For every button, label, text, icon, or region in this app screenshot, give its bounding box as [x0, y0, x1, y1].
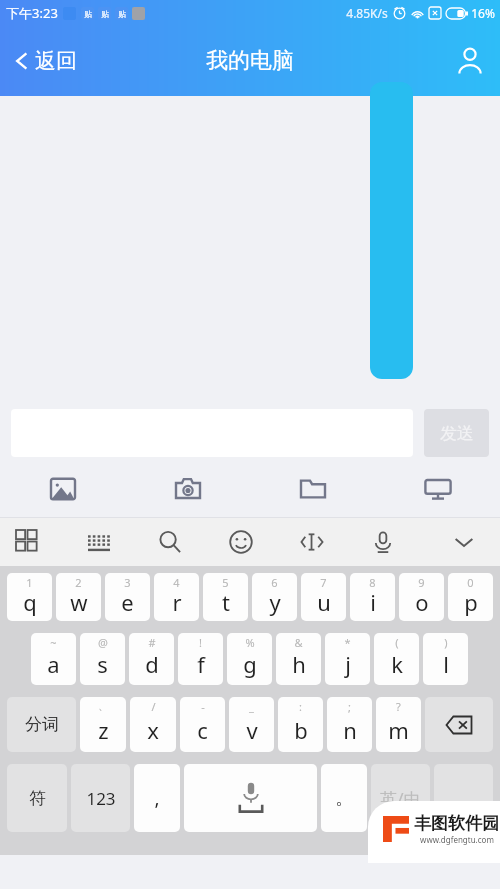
button[interactable]: 分词 [7, 697, 76, 752]
button[interactable]: Computer [375, 461, 500, 517]
button[interactable]: _ [229, 697, 274, 752]
button[interactable]: 6 [252, 573, 297, 621]
staticText: g [243, 649, 257, 679]
staticText: * [344, 635, 351, 650]
button[interactable]: 5 [203, 573, 248, 621]
staticText: 8 [369, 575, 376, 590]
button[interactable]: % [227, 633, 272, 685]
button[interactable]: ? [376, 697, 421, 752]
button[interactable]: : [278, 697, 323, 752]
staticText: 发送 [440, 423, 474, 444]
staticText: p [464, 587, 478, 617]
staticText: 7 [320, 575, 327, 590]
staticText: t [222, 587, 230, 617]
staticText: 英/中 [380, 787, 421, 810]
staticText: ~ [50, 635, 57, 650]
button[interactable]: Gallery [0, 461, 125, 517]
staticText: x [147, 715, 159, 745]
staticText: b [294, 715, 308, 745]
staticText: 丰图软件园 [414, 813, 499, 834]
button[interactable]: Hide keyboard [442, 518, 486, 566]
button[interactable]: 。 [321, 764, 367, 832]
staticText: u [317, 587, 331, 617]
button[interactable]: 7 [301, 573, 346, 621]
staticText: q [23, 587, 37, 617]
button[interactable]: 9 [399, 573, 444, 621]
button[interactable]: 2 [56, 573, 101, 621]
staticText: ! [199, 635, 202, 650]
button[interactable]: ~ [31, 633, 76, 685]
button[interactable]: 1 [7, 573, 52, 621]
button[interactable]: 123 [71, 764, 130, 832]
button[interactable]: Edit [300, 518, 371, 566]
button[interactable]: , [134, 764, 180, 832]
button[interactable]: Files [250, 461, 375, 517]
button[interactable]: Voice [371, 518, 442, 566]
staticText: h [292, 649, 306, 679]
button[interactable]: @ [80, 633, 125, 685]
button[interactable]: / [130, 697, 176, 752]
button[interactable]: 、 [80, 697, 126, 752]
staticText: - [201, 699, 205, 714]
staticText: 4 [173, 575, 180, 590]
button[interactable]: 符 [7, 764, 67, 832]
button[interactable]: Emoji [229, 518, 300, 566]
staticText: 1 [26, 575, 33, 590]
staticText: 123 [86, 787, 116, 810]
staticText: 5 [222, 575, 229, 590]
button[interactable]: - [180, 697, 225, 752]
button[interactable]: * [325, 633, 370, 685]
button[interactable]: # [129, 633, 174, 685]
staticText: 下午3:23 [6, 4, 58, 22]
button[interactable] [370, 82, 413, 379]
button[interactable]: 返回 [6, 42, 83, 80]
button[interactable]: & [276, 633, 321, 685]
button[interactable]: 0 [448, 573, 493, 621]
staticText: ) [444, 635, 448, 650]
staticText: ( [395, 635, 399, 650]
staticText: : [299, 699, 302, 714]
button[interactable]: ) [423, 633, 468, 685]
staticText: r [172, 587, 182, 617]
staticText: ? [396, 699, 401, 714]
staticText: www.dgfengtu.com [420, 834, 494, 845]
staticText: m [388, 715, 409, 745]
button[interactable]: Backspace [425, 697, 493, 752]
button[interactable]: 发送 [424, 409, 489, 457]
staticText: ; [348, 699, 351, 714]
staticText: @ [98, 635, 108, 650]
staticText: v [246, 715, 258, 745]
staticText: 3 [124, 575, 131, 590]
staticText: y [269, 587, 281, 617]
staticText: 2 [75, 575, 82, 590]
staticText: 返回 [35, 48, 77, 74]
staticText: 、 [98, 699, 109, 713]
button[interactable]: Camera [125, 461, 250, 517]
button[interactable]: 4 [154, 573, 199, 621]
staticText: 。 [335, 786, 354, 810]
button[interactable] [434, 764, 493, 832]
button[interactable]: 英/中 [371, 764, 430, 832]
button[interactable]: 3 [105, 573, 150, 621]
button[interactable]: 8 [350, 573, 395, 621]
staticText: e [121, 587, 134, 617]
staticText: 9 [418, 575, 425, 590]
staticText: k [391, 649, 403, 679]
button[interactable]: Space [184, 764, 317, 832]
staticText: 16% [471, 5, 495, 21]
staticText: 贴 [118, 9, 126, 19]
staticText: c [197, 715, 208, 745]
button[interactable]: ( [374, 633, 419, 685]
staticText: i [370, 587, 376, 617]
button[interactable]: Keyboard [87, 518, 158, 566]
staticText: , [154, 785, 160, 811]
staticText: 6 [271, 575, 278, 590]
button[interactable]: ! [178, 633, 223, 685]
button[interactable]: Apps [16, 518, 87, 566]
button[interactable]: Search [158, 518, 229, 566]
staticText: 符 [29, 788, 46, 809]
button[interactable]: Account [450, 41, 490, 81]
button[interactable]: ; [327, 697, 372, 752]
staticText: n [343, 715, 357, 745]
